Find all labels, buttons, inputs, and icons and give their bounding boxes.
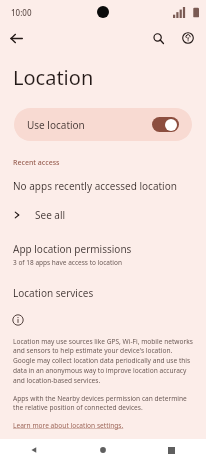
staticText: See all — [35, 208, 66, 222]
button[interactable]: Search — [146, 26, 170, 50]
staticText: Location — [13, 64, 94, 91]
button[interactable]: Back — [0, 439, 68, 461]
staticText: Use location — [27, 118, 152, 132]
staticText: 10:00 — [11, 7, 32, 18]
button[interactable]: App location permissions — [0, 241, 206, 268]
button[interactable]: Use location — [14, 108, 192, 141]
button[interactable]: Location services — [0, 284, 206, 302]
staticText: Location may use sources like GPS, Wi-Fi… — [13, 337, 196, 385]
staticText: App location permissions — [13, 242, 132, 256]
button[interactable]: Help — [176, 26, 200, 50]
button[interactable]: Learn more about location settings. — [0, 421, 134, 430]
button[interactable]: Back — [4, 26, 28, 50]
staticText: Apps with the Nearby devices permission … — [13, 394, 196, 412]
button[interactable]: Home — [68, 439, 137, 461]
button[interactable]: See all — [0, 205, 206, 225]
staticText: Recent access — [13, 158, 60, 168]
staticText: No apps recently accessed location — [13, 179, 177, 193]
button[interactable]: Recents — [137, 439, 206, 461]
staticText: 3 of 18 apps have access to location — [13, 258, 122, 267]
